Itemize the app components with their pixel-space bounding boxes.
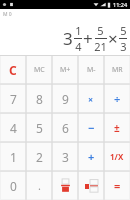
button[interactable]: 1	[1, 143, 25, 170]
staticText: 3	[63, 27, 73, 50]
button[interactable]: 4	[1, 114, 25, 141]
staticText: 5	[120, 23, 127, 38]
staticText: −	[88, 120, 95, 135]
button[interactable]: 2	[27, 143, 51, 170]
staticText: =	[114, 178, 121, 193]
staticText: 21	[94, 39, 107, 54]
button[interactable]: 9	[53, 85, 77, 112]
staticText: +	[83, 27, 93, 50]
button[interactable]: −	[79, 114, 103, 141]
staticText: 9	[62, 91, 69, 107]
button[interactable]: 7	[1, 85, 25, 112]
staticText: ×	[88, 93, 94, 105]
button[interactable]: 1/X	[105, 143, 129, 170]
button[interactable]: M+	[53, 56, 77, 83]
staticText: ±	[114, 121, 120, 135]
staticText: +	[88, 149, 95, 164]
button[interactable]: MC	[27, 56, 51, 83]
staticText: .	[38, 178, 41, 193]
staticText: ÷	[114, 91, 121, 106]
staticText: ×	[108, 27, 118, 50]
button[interactable]: 3	[53, 143, 77, 170]
button[interactable]: ÷	[105, 85, 129, 112]
button[interactable]: 6	[53, 114, 77, 141]
staticText: MR	[112, 65, 123, 75]
staticText: M-	[87, 65, 96, 75]
button[interactable]: +	[79, 143, 103, 170]
staticText: 11:24	[113, 1, 128, 8]
button[interactable]: 5	[27, 114, 51, 141]
staticText: 7	[10, 91, 17, 107]
staticText: MC	[34, 65, 45, 75]
button[interactable]: 0	[1, 172, 25, 199]
staticText: M+	[60, 65, 71, 75]
button[interactable]: =	[105, 172, 129, 199]
button[interactable]: M-	[79, 56, 103, 83]
button[interactable]: 8	[27, 85, 51, 112]
staticText: 6	[62, 120, 69, 136]
staticText: 1	[10, 149, 17, 165]
staticText: M 0	[3, 11, 12, 18]
staticText: 1/X	[110, 151, 124, 162]
staticText: 2	[36, 149, 43, 165]
staticText: 3	[120, 39, 127, 54]
button[interactable]: MR	[105, 56, 129, 83]
button[interactable]: Fraction	[53, 172, 77, 199]
button[interactable]: C	[1, 56, 25, 83]
staticText: 4	[10, 120, 17, 136]
button[interactable]: .	[27, 172, 51, 199]
button[interactable]: ×	[79, 85, 103, 112]
staticText: 4	[75, 39, 82, 54]
staticText: 5	[36, 120, 43, 136]
staticText: 8	[36, 91, 43, 107]
staticText: 3	[62, 149, 69, 165]
staticText: 0	[10, 178, 17, 194]
staticText: C	[9, 62, 17, 78]
button[interactable]: ±	[105, 114, 129, 141]
staticText: 1	[75, 23, 82, 38]
button[interactable]: Mixed fraction	[79, 172, 103, 199]
staticText: 5	[97, 23, 104, 38]
